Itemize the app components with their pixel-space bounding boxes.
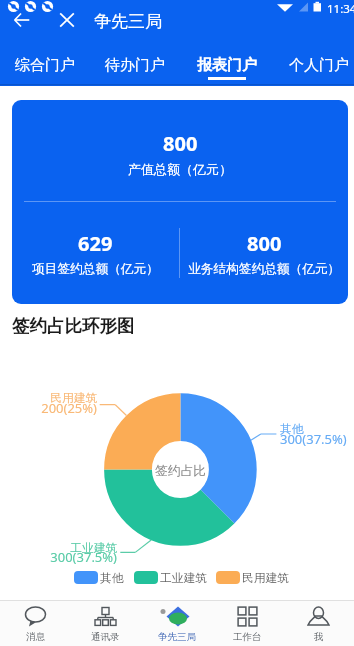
staticText: 争先三局 [158,631,196,643]
staticText: 工业建筑 [160,571,207,586]
staticText: 工作台 [233,631,262,643]
staticText: 报表门户 [182,56,272,75]
staticText: 签约占比环形图 [12,315,135,337]
staticText: 其他 [280,422,349,437]
staticText: 争先三局 [94,11,162,32]
staticText: 通讯录 [91,631,120,643]
staticText: 800 [247,230,282,257]
button[interactable]: 其他 [74,571,124,586]
staticText: 个人门户 [274,56,354,75]
staticText: 工业建筑 [27,541,117,556]
staticText: 800 [163,130,198,157]
staticText: 签约占比 [140,463,221,479]
staticText: 业务结构签约总额（亿元） [188,261,341,277]
staticText: 产值总额（亿元） [128,161,232,177]
button[interactable]: 800 [12,100,348,304]
button[interactable]: 工业建筑 [134,571,207,586]
staticText: 629 [78,230,113,257]
staticText: 300(37.5%) [280,430,349,448]
staticText: 民用建筑 [242,571,289,586]
staticText: 综合门户 [0,56,90,75]
button[interactable]: 消息 [0,601,70,646]
button[interactable]: Back [8,6,36,34]
button[interactable]: Close [53,6,81,34]
staticText: 民用建筑 [12,391,97,406]
button[interactable]: 综合门户 [0,43,90,86]
button[interactable]: 工作台 [212,601,283,646]
button[interactable]: 待办门户 [90,43,180,86]
staticText: 其他 [100,571,124,586]
staticText: 待办门户 [90,56,180,75]
button[interactable]: 通讯录 [70,601,141,646]
staticText: 200(25%) [12,399,97,417]
button[interactable]: 我 [283,601,354,646]
button[interactable]: 民用建筑 [216,571,289,586]
button[interactable]: 报表门户 [182,43,272,86]
staticText: 消息 [26,631,45,643]
button[interactable]: 争先三局 [141,601,212,646]
staticText: 项目签约总额（亿元） [32,261,159,277]
button[interactable]: 个人门户 [274,43,354,86]
staticText: 300(37.5%) [27,548,117,566]
staticText: 我 [314,631,324,643]
staticText: 11:34 [327,1,354,17]
